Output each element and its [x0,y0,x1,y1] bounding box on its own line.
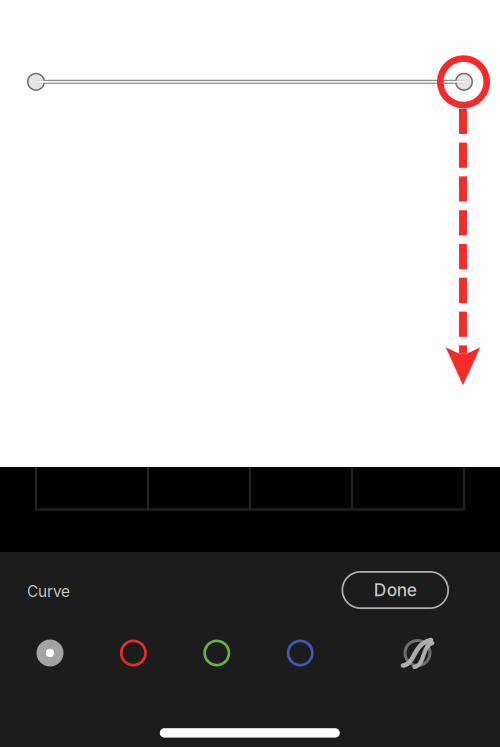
button[interactable]: Red channel [120,631,203,675]
button[interactable]: Luminance channel [36,631,120,675]
button[interactable]: Tone presets [395,631,439,675]
staticText: Done [374,579,417,600]
button[interactable]: Blue channel [287,631,314,675]
staticText: Curve [27,582,70,601]
button[interactable]: Done [341,571,449,609]
button[interactable]: Green channel [203,631,287,675]
